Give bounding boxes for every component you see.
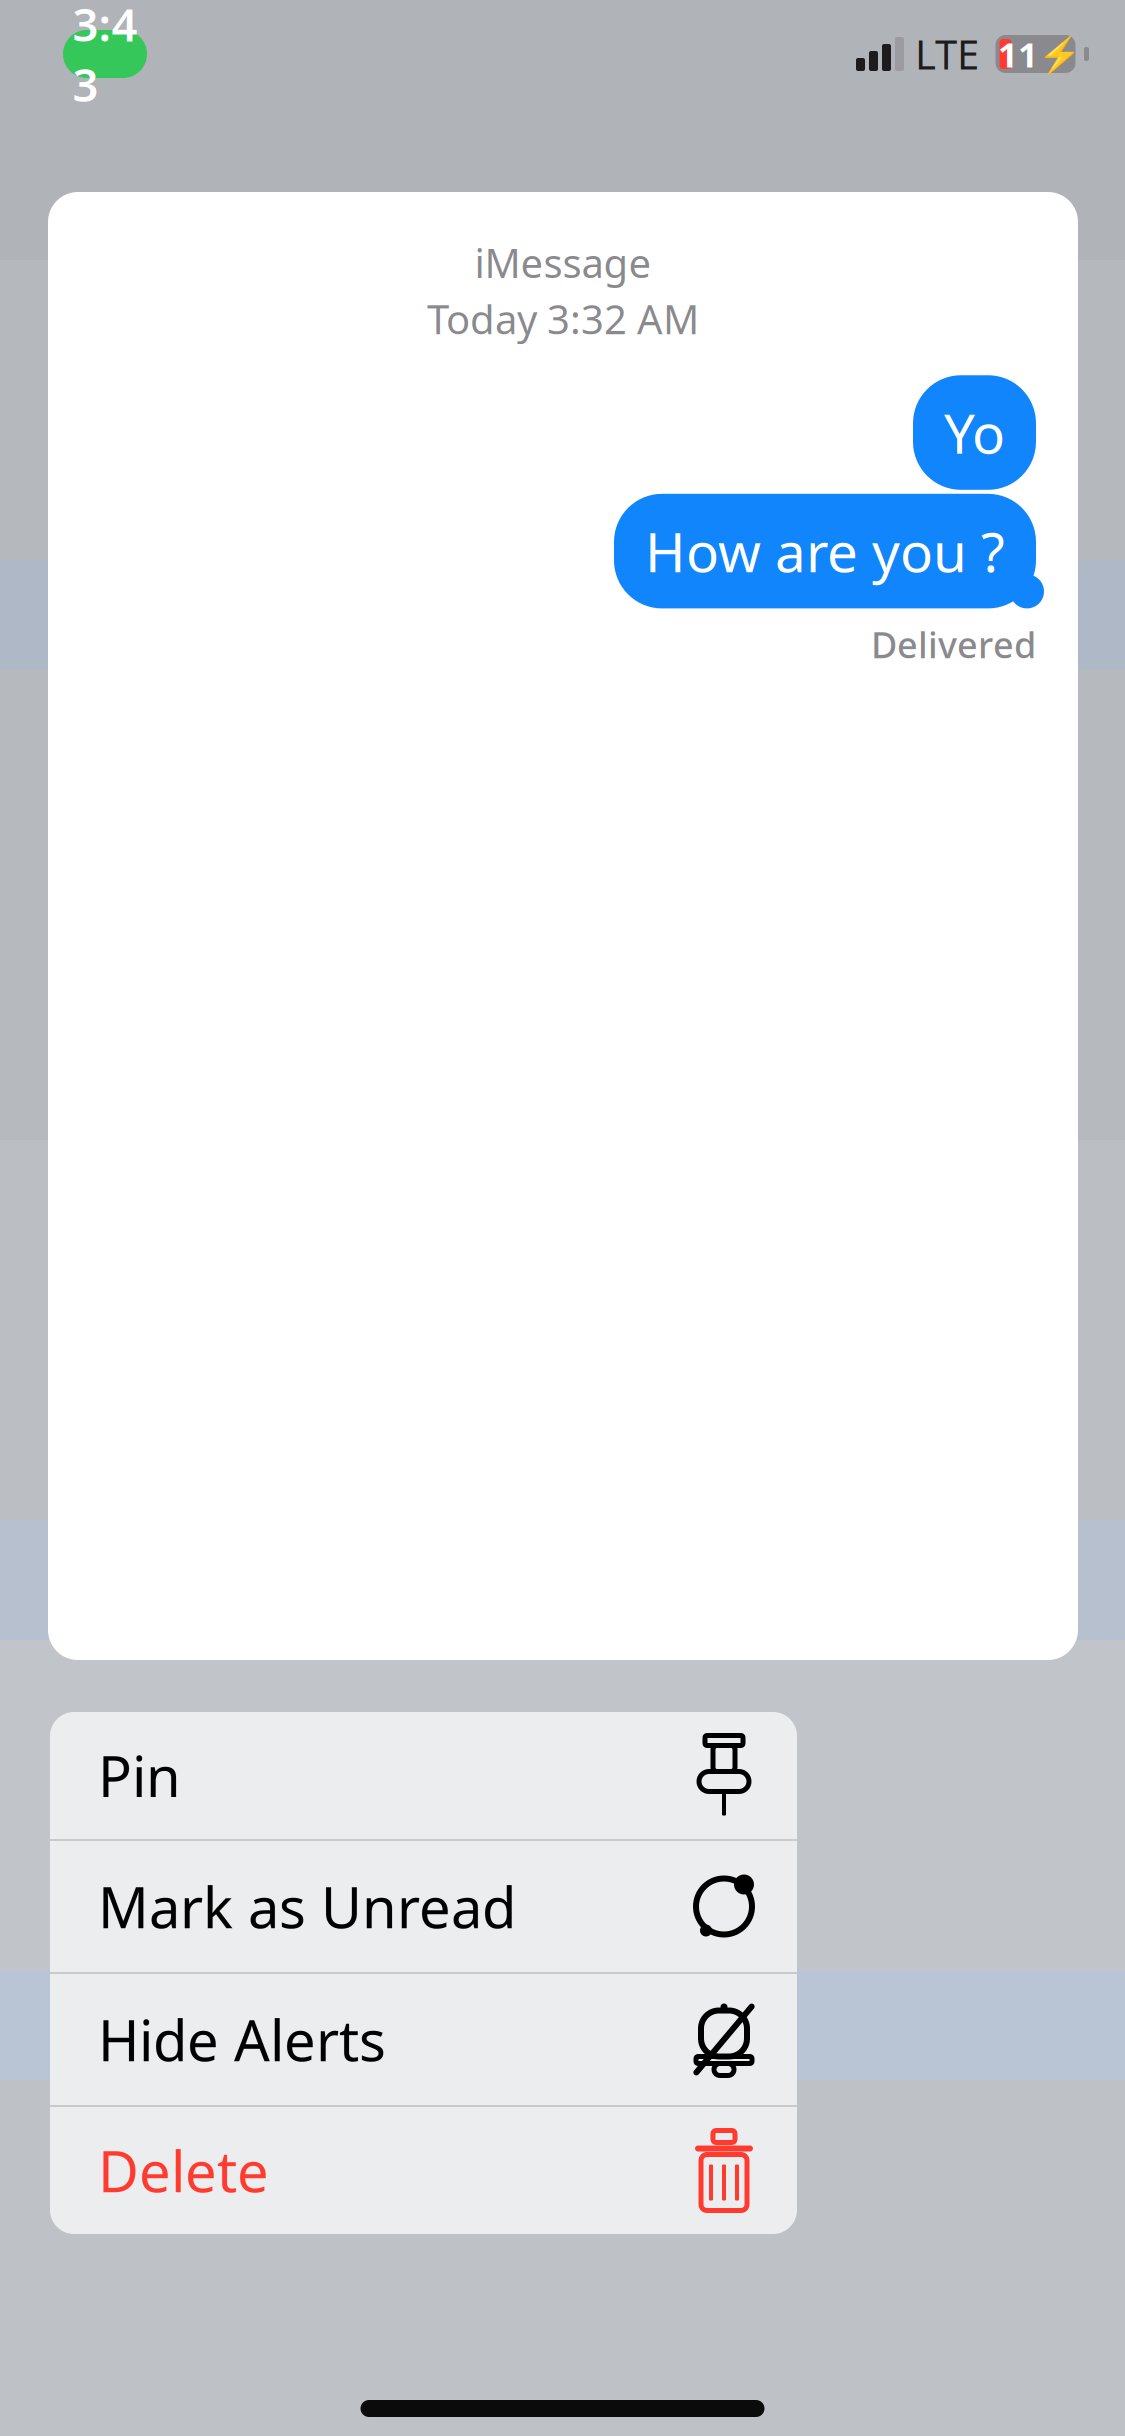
staticText: Mark as Unread (98, 1869, 516, 1944)
button[interactable]: Delete (50, 2107, 797, 2234)
staticText: Yo (944, 396, 1005, 469)
staticText: Delivered (871, 620, 1036, 668)
staticText: Delete (98, 2133, 269, 2208)
staticText: How are you ? (645, 515, 1005, 587)
button[interactable]: Pin (50, 1712, 797, 1839)
staticText: Hide Alerts (98, 2002, 386, 2077)
staticText: 11⚡ (998, 31, 1081, 77)
staticText: Pin (98, 1738, 181, 1813)
staticText: Today 3:32 AM (427, 292, 699, 345)
staticText: 3:43 (72, 0, 137, 114)
button[interactable]: Mark as Unread (50, 1841, 797, 1972)
button[interactable]: Hide Alerts (50, 1974, 797, 2105)
staticText: LTE (915, 27, 979, 80)
staticText: iMessage (474, 236, 651, 289)
